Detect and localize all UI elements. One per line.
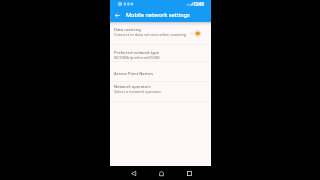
button[interactable]: Network operators (110, 81, 211, 101)
staticText: Data roaming (114, 27, 141, 33)
staticText: Select a network operator (114, 89, 162, 94)
staticText: Preferred network type (114, 50, 160, 56)
button[interactable]: Preferred network type (110, 44, 211, 61)
staticText: Mobile network settings (126, 11, 190, 18)
staticText: Access Point Names (114, 71, 153, 77)
button[interactable]: Back (126, 166, 140, 180)
staticText: 10:48 (193, 1, 205, 7)
button[interactable]: Data roaming (110, 22, 211, 44)
staticText: WCDMA (preferred)/GSM (114, 55, 160, 60)
button[interactable]: Recent apps (182, 166, 196, 180)
button[interactable]: Home (154, 166, 168, 180)
staticText: Network operators (114, 84, 151, 90)
button[interactable]: Access Point Names (110, 61, 211, 81)
button[interactable]: Data roaming switch (189, 29, 202, 38)
button[interactable]: Navigate up (110, 8, 131, 22)
staticText: Connect to data services when roaming (114, 32, 187, 37)
